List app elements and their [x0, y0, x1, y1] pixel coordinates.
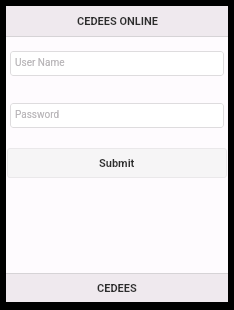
- staticText: CEDEES: [97, 282, 137, 295]
- staticText: User Name: [15, 57, 65, 69]
- staticText: Password: [15, 109, 60, 121]
- button[interactable]: Password: [10, 103, 224, 128]
- staticText: CEDEES ONLINE: [77, 15, 158, 28]
- button[interactable]: User Name: [10, 51, 224, 76]
- button[interactable]: Submit: [7, 148, 227, 178]
- button[interactable]: CEDEES: [6, 274, 228, 302]
- staticText: Submit: [99, 157, 135, 170]
